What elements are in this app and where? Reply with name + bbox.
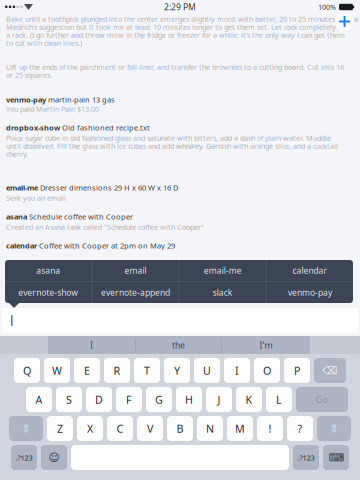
staticText: venmo-pay [288, 287, 332, 298]
staticText: a rack. (I go further and throw mine in … [6, 30, 345, 40]
button[interactable]: H [176, 387, 202, 412]
staticText: I [235, 363, 239, 378]
button[interactable]: venmo-pay [267, 282, 353, 303]
staticText: X [87, 421, 93, 436]
staticText: V [147, 421, 153, 436]
button[interactable]: N [197, 416, 223, 441]
button[interactable]: M [227, 416, 253, 441]
staticText: Coffee with Cooper at 2pm on May 29 [37, 240, 175, 251]
staticText: cherry. [6, 149, 28, 159]
button[interactable]: ⌨ [323, 445, 349, 470]
staticText: dropbox-show [6, 122, 60, 133]
button[interactable]: the [136, 336, 221, 354]
staticText: ! [268, 421, 271, 436]
staticText: E [84, 363, 90, 378]
staticText: ⌨ [328, 451, 343, 464]
staticText: to cut with clean lines.) [6, 38, 82, 48]
button[interactable]: J [206, 387, 232, 412]
staticText: I [90, 339, 93, 351]
staticText: until dissolved. Fill the glass with ice… [6, 141, 338, 151]
staticText: ? [297, 421, 302, 436]
button[interactable]: ⇧ [317, 416, 351, 441]
button[interactable]: O [254, 358, 280, 383]
button[interactable]: P [284, 358, 310, 383]
button[interactable]: email-me [179, 260, 266, 281]
button[interactable]: Y [164, 358, 190, 383]
staticText: H [185, 392, 193, 407]
button[interactable]: Go [296, 387, 348, 412]
staticText: Old fashioned recipe.txt [60, 122, 150, 133]
staticText: Y [174, 363, 180, 378]
button[interactable]: .?123 [293, 445, 319, 470]
button[interactable]: Q [14, 358, 40, 383]
button[interactable]: asana [5, 260, 91, 281]
staticText: Schedule coffee with Cooper [27, 211, 133, 222]
button[interactable]: .?123 [11, 445, 37, 470]
staticText: Bake until a toothpick plunged into the … [6, 14, 360, 24]
staticText: evernote-append [101, 287, 170, 298]
button[interactable]: W [44, 358, 70, 383]
button[interactable]: K [236, 387, 262, 412]
staticText: 2:29 PM [164, 1, 196, 13]
staticText: F [126, 392, 132, 407]
staticText: asana [6, 211, 27, 222]
staticText: T [144, 363, 150, 378]
button[interactable]: I [224, 358, 250, 383]
button[interactable]: ⇧ [9, 416, 43, 441]
staticText: J [217, 392, 220, 407]
staticText: the [172, 339, 185, 351]
staticText: ☺ [48, 451, 59, 464]
button[interactable]: X [77, 416, 103, 441]
button[interactable]: S [56, 387, 82, 412]
button[interactable]: D [86, 387, 112, 412]
button[interactable]: calendar [267, 260, 353, 281]
button[interactable]: R [104, 358, 130, 383]
staticText: N [206, 421, 214, 436]
staticText: Go [315, 393, 328, 406]
button[interactable]: ⌫ [314, 358, 346, 383]
staticText: Medrich's suggestion but it took me at l… [6, 22, 346, 32]
button[interactable]: New [335, 12, 354, 31]
staticText: C [116, 421, 123, 436]
button[interactable]: Z [47, 416, 73, 441]
staticText: ⇧ [21, 422, 30, 435]
staticText: .?123 [297, 452, 314, 463]
button[interactable]: I'm [222, 336, 310, 354]
button[interactable]: evernote-show [5, 282, 91, 303]
button[interactable]: G [146, 387, 172, 412]
button[interactable]: ! [257, 416, 283, 441]
staticText: R [113, 363, 120, 378]
button[interactable]: A [26, 387, 52, 412]
staticText: U [203, 363, 211, 378]
staticText: 100% [318, 2, 336, 12]
staticText: O [263, 363, 271, 378]
staticText: W [52, 363, 62, 378]
button[interactable]: email [92, 260, 178, 281]
staticText: calendar [292, 265, 327, 276]
staticText: Place sugar cube in old fashioned glass … [6, 133, 331, 143]
staticText: Z [57, 421, 63, 436]
staticText: Sent you an email [6, 193, 66, 203]
staticText: .?123 [15, 452, 32, 463]
staticText: A [35, 392, 42, 407]
button[interactable]: evernote-append [92, 282, 178, 303]
button[interactable]: U [194, 358, 220, 383]
button[interactable]: C [107, 416, 133, 441]
staticText: K [245, 392, 252, 407]
button[interactable]: ☺ [41, 445, 67, 470]
button[interactable]: E [74, 358, 100, 383]
button[interactable]: F [116, 387, 142, 412]
button[interactable]: ? [287, 416, 313, 441]
button[interactable]: I [48, 336, 135, 354]
button[interactable]: L [266, 387, 292, 412]
staticText: D [95, 392, 103, 407]
button[interactable]: T [134, 358, 160, 383]
button[interactable]: slack [179, 282, 266, 303]
button[interactable]: V [137, 416, 163, 441]
staticText: slack [213, 287, 233, 298]
staticText: or 25 squares. [6, 70, 52, 80]
staticText: email-me [204, 265, 242, 276]
button[interactable]: B [167, 416, 193, 441]
